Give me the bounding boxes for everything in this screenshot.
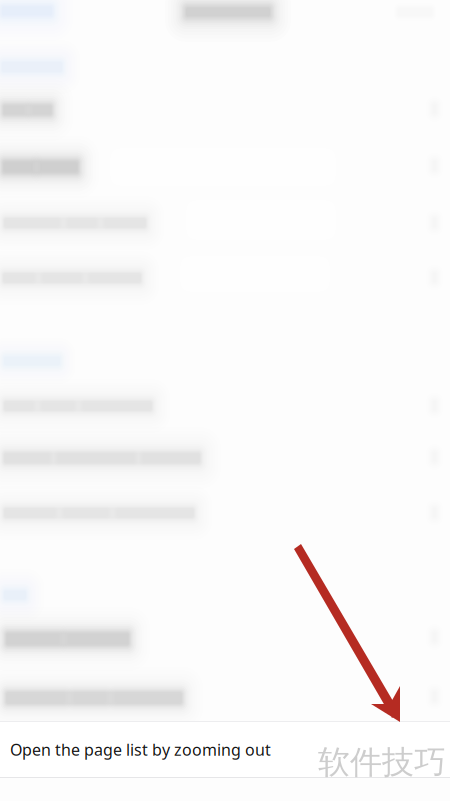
button[interactable] — [0, 0, 450, 801]
button[interactable] — [0, 0, 450, 801]
button[interactable] — [0, 0, 450, 801]
button[interactable] — [0, 0, 450, 801]
button[interactable] — [0, 0, 450, 801]
button[interactable] — [0, 0, 450, 801]
staticText: Open the page list by zooming out — [10, 739, 271, 760]
staticText: 软件技巧 — [318, 743, 446, 782]
button[interactable] — [0, 0, 450, 801]
button[interactable] — [0, 0, 450, 801]
button[interactable] — [0, 0, 450, 801]
